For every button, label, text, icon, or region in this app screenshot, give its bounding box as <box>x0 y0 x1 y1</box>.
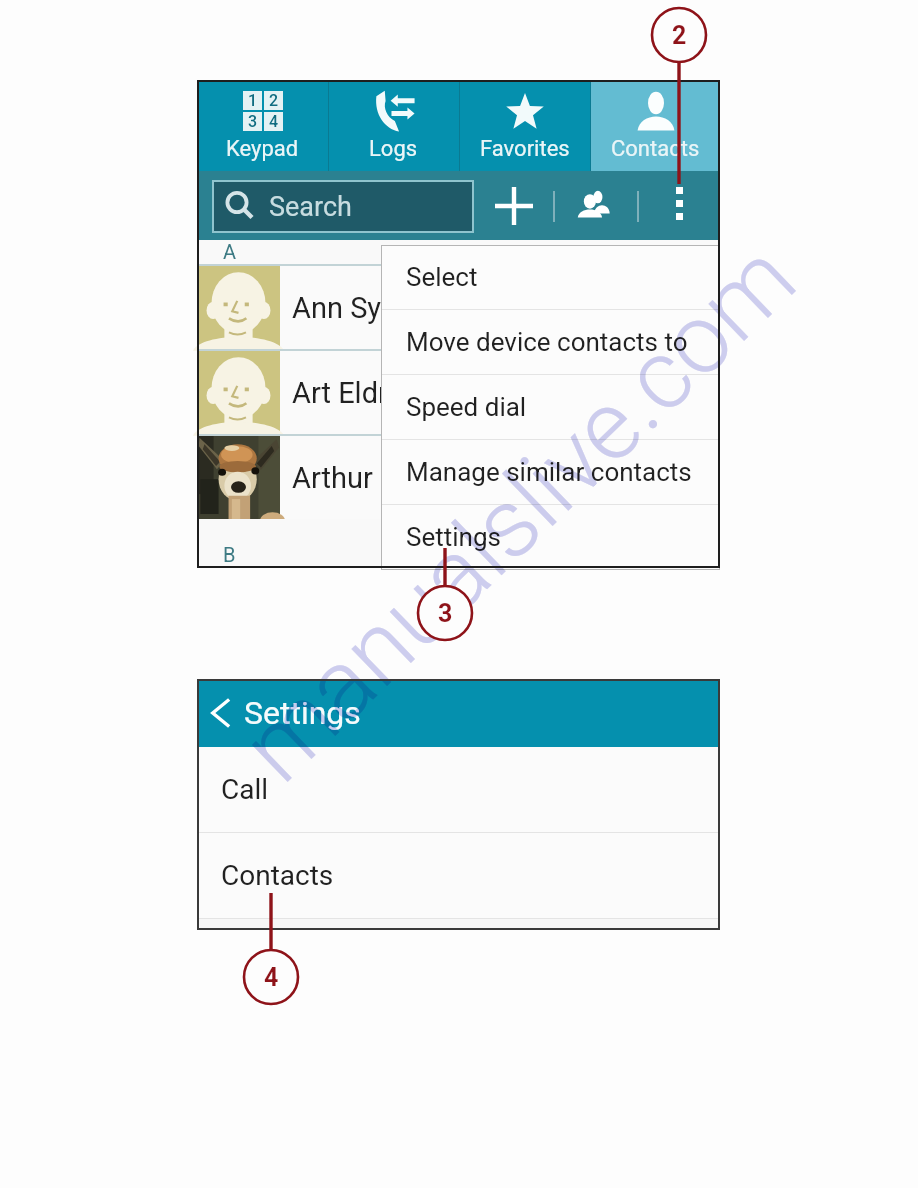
staticText: Settings <box>244 694 361 732</box>
staticText: Ann Sym <box>292 291 407 325</box>
staticText: Keypad <box>226 136 299 162</box>
staticText: 2 <box>672 21 687 50</box>
button[interactable]: 1 <box>197 80 328 171</box>
staticText: 3 <box>248 112 258 131</box>
button[interactable]: Favorites <box>459 80 590 171</box>
button[interactable]: Add contact <box>488 180 540 232</box>
staticText: Move device contacts to <box>406 327 688 357</box>
staticText: Contacts <box>221 859 334 892</box>
staticText: Favorites <box>480 136 570 162</box>
button[interactable]: Call <box>197 747 720 832</box>
staticText: Select <box>406 262 478 292</box>
staticText: Arthur C <box>292 461 399 495</box>
staticText: A <box>223 240 237 263</box>
staticText: B <box>223 543 236 566</box>
button[interactable]: Select <box>381 245 720 309</box>
button[interactable]: Logs <box>328 80 459 171</box>
button[interactable]: Speed dial <box>381 375 720 439</box>
staticText: Search <box>269 191 352 223</box>
staticText: Settings <box>406 522 501 552</box>
staticText: Logs <box>369 136 418 162</box>
button[interactable]: Move device contacts to <box>381 310 720 374</box>
button[interactable]: Groups <box>570 180 622 232</box>
staticText: Manage similar contacts <box>406 457 692 487</box>
staticText: Contacts <box>611 136 700 162</box>
staticText: 1 <box>248 91 258 110</box>
button[interactable]: Arthur C <box>197 436 720 519</box>
staticText: 4 <box>264 963 279 992</box>
staticText: Art Eldr <box>292 376 388 410</box>
button[interactable]: Search <box>212 180 474 233</box>
staticText: 4 <box>269 112 279 131</box>
button[interactable]: Ann Sym <box>197 266 720 349</box>
staticText: Speed dial <box>406 392 527 422</box>
button[interactable]: Contacts <box>197 833 720 918</box>
staticText: 3 <box>438 599 453 628</box>
button[interactable]: More options <box>656 180 702 226</box>
button[interactable]: Back <box>199 693 239 733</box>
button[interactable]: Art Eldr <box>197 351 720 434</box>
button[interactable]: Settings <box>381 505 720 569</box>
button[interactable]: Manage similar contacts <box>381 440 720 504</box>
staticText: Call <box>221 773 269 806</box>
button[interactable]: Contacts <box>590 80 720 171</box>
staticText: 2 <box>269 91 279 110</box>
